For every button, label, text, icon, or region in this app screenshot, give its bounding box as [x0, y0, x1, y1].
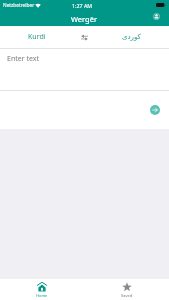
button[interactable]: Kurdi	[0, 26, 74, 48]
staticText: Wergêr	[71, 14, 98, 24]
staticText: کوردی	[122, 33, 141, 41]
staticText: Kurdi	[28, 32, 46, 42]
staticText: Enter text	[7, 54, 39, 64]
button[interactable]: Saved	[84, 279, 169, 300]
button[interactable]: Swap languages	[74, 27, 94, 47]
button[interactable]: Translate	[150, 105, 160, 115]
button[interactable]: Home	[0, 279, 84, 300]
staticText: 1:27 AM	[72, 2, 93, 9]
staticText: Home	[36, 293, 48, 298]
staticText: Saved	[121, 293, 133, 298]
staticText: Netzbetreiber	[3, 2, 35, 9]
button[interactable]: Account	[150, 10, 163, 23]
button[interactable]: کوردی	[94, 26, 169, 48]
